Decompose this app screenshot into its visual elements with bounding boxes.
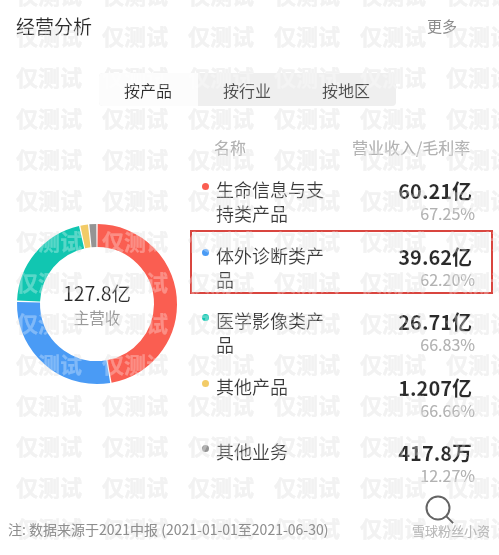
staticText: 仅测试	[188, 183, 255, 215]
button[interactable]: 按产品	[99, 73, 198, 106]
staticText: 仅测试	[274, 224, 341, 256]
staticText: 仅测试	[16, 183, 83, 215]
staticText: 仅测试	[16, 388, 83, 420]
staticText: 仅测试	[16, 224, 83, 256]
staticText: 仅测试	[16, 101, 83, 133]
staticText: 仅测试	[102, 19, 169, 51]
staticText: 仅测试	[188, 183, 255, 215]
staticText: 仅测试	[360, 0, 427, 10]
staticText: 仅测试	[360, 429, 427, 461]
staticText: 仅测试	[360, 224, 427, 256]
staticText: 66.83%	[333, 332, 475, 355]
staticText: 仅测试	[102, 142, 169, 174]
button[interactable]: 其他产品	[190, 367, 493, 429]
staticText: 名称	[214, 135, 247, 158]
button[interactable]: 更多	[410, 13, 474, 39]
staticText: 经营分析	[16, 12, 93, 40]
staticText: 仅测试	[188, 265, 255, 297]
staticText: 仅测试	[446, 347, 499, 379]
staticText: 仅测试	[188, 306, 255, 338]
staticText: 仅测试	[16, 470, 83, 502]
staticText: 仅测试	[360, 347, 427, 379]
staticText: 仅测试	[188, 0, 255, 10]
staticText: 仅测试	[446, 224, 499, 256]
staticText: 仅测试	[274, 101, 341, 133]
staticText: 按地区	[322, 78, 371, 101]
staticText: 仅测试	[360, 224, 427, 256]
staticText: 仅测试	[102, 60, 169, 92]
staticText: 26.71亿	[330, 307, 472, 336]
staticText: 仅测试	[360, 60, 427, 92]
staticText: 仅测试	[16, 19, 83, 51]
staticText: 仅测试	[446, 142, 499, 174]
button[interactable]: 其他业务	[190, 432, 493, 494]
staticText: 仅测试	[16, 470, 83, 502]
staticText: 体外诊断类产品	[216, 242, 329, 292]
staticText: 仅测试	[274, 470, 341, 502]
staticText: 仅测试	[274, 60, 341, 92]
staticText: 仅测试	[274, 347, 341, 379]
staticText: 仅测试	[274, 265, 341, 297]
staticText: 127.8亿	[17, 278, 177, 306]
staticText: 仅测试	[188, 142, 255, 174]
staticText: 仅测试	[16, 347, 83, 379]
staticText: 仅测试	[446, 347, 499, 379]
button[interactable]: 按地区	[297, 73, 396, 106]
staticText: 39.62亿	[330, 242, 472, 271]
button[interactable]: 医学影像类产品	[190, 301, 493, 363]
staticText: 仅测试	[274, 429, 341, 461]
staticText: 仅测试	[188, 0, 255, 10]
staticText: 仅测试	[446, 142, 499, 174]
staticText: 67.25%	[333, 201, 475, 224]
staticText: 仅测试	[16, 60, 83, 92]
staticText: 仅测试	[102, 101, 169, 133]
staticText: 仅测试	[360, 511, 427, 543]
staticText: 仅测试	[274, 19, 341, 51]
staticText: 仅测试	[274, 19, 341, 51]
staticText: 仅测试	[446, 388, 499, 420]
staticText: 仅测试	[16, 0, 83, 10]
button[interactable]: 生命信息与支持类产品	[190, 170, 493, 232]
staticText: 仅测试	[446, 224, 499, 256]
staticText: 仅测试	[274, 265, 341, 297]
staticText: 仅测试	[360, 19, 427, 51]
button[interactable]: 按行业	[198, 73, 297, 106]
staticText: 仅测试	[16, 224, 83, 256]
staticText: 仅测试	[188, 60, 255, 92]
button[interactable]: 体外诊断类产品	[190, 236, 493, 298]
staticText: 仅测试	[102, 265, 169, 297]
staticText: 仅测试	[102, 470, 169, 502]
staticText: 仅测试	[446, 470, 499, 502]
staticText: 仅测试	[274, 183, 341, 215]
staticText: 仅测试	[446, 60, 499, 92]
staticText: 仅测试	[446, 19, 499, 51]
staticText: 仅测试	[360, 265, 427, 297]
staticText: 仅测试	[102, 306, 169, 338]
staticText: 仅测试	[360, 60, 427, 92]
staticText: 仅测试	[16, 306, 83, 338]
staticText: 仅测试	[188, 388, 255, 420]
staticText: 仅测试	[360, 347, 427, 379]
staticText: 仅测试	[16, 19, 83, 51]
staticText: 仅测试	[102, 224, 169, 256]
staticText: 仅测试	[360, 388, 427, 420]
staticText: 66.66%	[333, 398, 475, 421]
staticText: 仅测试	[188, 265, 255, 297]
staticText: 仅测试	[188, 19, 255, 51]
staticText: 仅测试	[188, 388, 255, 420]
staticText: 仅测试	[446, 19, 499, 51]
button[interactable]: Search	[422, 492, 460, 530]
staticText: 仅测试	[274, 306, 341, 338]
staticText: 仅测试	[102, 388, 169, 420]
staticText: 仅测试	[360, 470, 427, 502]
staticText: 注: 数据来源于2021中报 (2021-01-01至2021-06-30)	[8, 519, 329, 539]
staticText: 其他业务	[216, 438, 329, 464]
staticText: 仅测试	[188, 470, 255, 502]
staticText: 仅测试	[188, 470, 255, 502]
staticText: 仅测试	[360, 388, 427, 420]
staticText: 仅测试	[274, 388, 341, 420]
